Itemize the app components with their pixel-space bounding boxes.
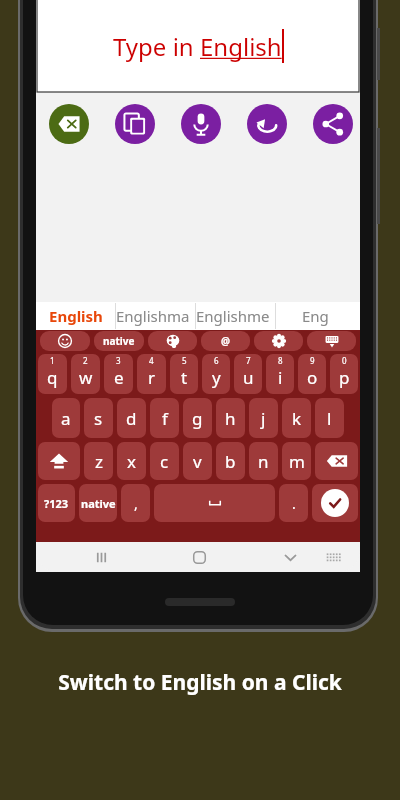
button[interactable]: , — [121, 484, 150, 522]
button[interactable]: j — [249, 398, 278, 438]
button[interactable]: . — [279, 484, 308, 522]
button[interactable]: Space — [154, 484, 275, 522]
staticText: 4 — [149, 355, 154, 366]
staticText: t — [181, 366, 188, 389]
button[interactable]: f — [150, 398, 179, 438]
button[interactable]: Emoji — [40, 331, 90, 351]
button[interactable]: v — [183, 442, 212, 480]
staticText: a — [61, 407, 71, 430]
staticText: l — [327, 407, 332, 430]
button[interactable]: Home — [186, 544, 212, 570]
button[interactable]: l — [315, 398, 344, 438]
staticText: native — [103, 334, 135, 348]
staticText: 5 — [182, 355, 187, 366]
staticText: Englishmen — [196, 306, 275, 326]
staticText: 8 — [278, 355, 283, 366]
button[interactable]: z — [84, 442, 113, 480]
staticText: 3 — [116, 355, 121, 366]
button[interactable]: Keyboard — [320, 544, 346, 570]
button[interactable]: Backspace — [49, 104, 89, 144]
staticText: w — [79, 366, 93, 389]
staticText: q — [47, 366, 58, 389]
staticText: native — [81, 496, 116, 511]
button[interactable]: d — [117, 398, 146, 438]
button[interactable]: g — [183, 398, 212, 438]
button[interactable]: ?123 — [38, 484, 75, 522]
button[interactable]: Shift — [38, 442, 80, 480]
button[interactable]: c — [150, 442, 179, 480]
button[interactable]: 4 — [137, 354, 166, 394]
button[interactable]: 6 — [202, 354, 230, 394]
button[interactable]: a — [52, 398, 80, 438]
button[interactable]: 3 — [104, 354, 133, 394]
button[interactable]: 8 — [266, 354, 294, 394]
staticText: g — [192, 407, 203, 430]
button[interactable]: k — [282, 398, 311, 438]
staticText: j — [261, 407, 266, 430]
staticText: @ — [221, 334, 230, 348]
staticText: o — [307, 366, 318, 389]
button[interactable]: Eng — [276, 302, 355, 330]
staticText: Eng — [302, 306, 329, 326]
button[interactable]: 1 — [38, 354, 67, 394]
button[interactable]: Back — [277, 544, 303, 570]
staticText: . — [292, 494, 296, 513]
staticText: Englishman — [116, 306, 195, 326]
button[interactable]: h — [216, 398, 245, 438]
button[interactable]: Englishmen — [196, 302, 275, 330]
button[interactable]: 2 — [71, 354, 100, 394]
button[interactable]: 5 — [170, 354, 198, 394]
staticText: s — [94, 407, 103, 430]
button[interactable]: Copy — [115, 104, 155, 144]
staticText: n — [258, 450, 269, 473]
staticText: b — [225, 450, 236, 473]
button[interactable]: Enter — [312, 484, 358, 522]
staticText: z — [95, 450, 103, 473]
button[interactable]: Hide keyboard — [307, 331, 356, 351]
staticText: 2 — [83, 355, 88, 366]
button[interactable]: Recents — [88, 544, 114, 570]
staticText: x — [127, 450, 136, 473]
staticText: e — [114, 366, 124, 389]
button[interactable]: Undo — [247, 104, 287, 144]
staticText: 7 — [246, 355, 251, 366]
button[interactable]: s — [84, 398, 113, 438]
staticText: i — [278, 366, 283, 389]
staticText: English — [200, 30, 282, 63]
staticText: 1 — [50, 355, 55, 366]
button[interactable]: 9 — [298, 354, 326, 394]
staticText: Type in — [113, 30, 200, 63]
staticText: 6 — [214, 355, 219, 366]
staticText: v — [193, 450, 202, 473]
staticText: r — [148, 366, 156, 389]
button[interactable]: native — [79, 484, 117, 522]
button[interactable]: Theme — [148, 331, 197, 351]
staticText: m — [289, 450, 305, 473]
button[interactable]: n — [249, 442, 278, 480]
button[interactable]: 0 — [330, 354, 358, 394]
staticText: k — [292, 407, 302, 430]
staticText: Switch to English on a Click — [58, 668, 342, 697]
button[interactable]: Share — [313, 104, 353, 144]
staticText: ?123 — [44, 496, 69, 511]
button[interactable]: b — [216, 442, 245, 480]
button[interactable]: Delete — [315, 442, 358, 480]
button[interactable]: 7 — [234, 354, 262, 394]
staticText: f — [162, 407, 168, 430]
staticText: 9 — [310, 355, 315, 366]
staticText: u — [243, 366, 254, 389]
button[interactable]: x — [117, 442, 146, 480]
button[interactable]: Settings — [254, 331, 303, 351]
button[interactable]: @ — [201, 331, 250, 351]
staticText: English — [49, 306, 103, 326]
button[interactable]: English — [36, 302, 115, 330]
button[interactable]: Englishman — [116, 302, 195, 330]
button[interactable]: Voice input — [181, 104, 221, 144]
staticText: 0 — [342, 355, 347, 366]
staticText: c — [160, 450, 169, 473]
staticText: , — [134, 494, 138, 513]
button[interactable]: native — [94, 331, 144, 351]
staticText: p — [339, 366, 350, 389]
button[interactable]: m — [282, 442, 311, 480]
staticText: y — [212, 366, 221, 389]
